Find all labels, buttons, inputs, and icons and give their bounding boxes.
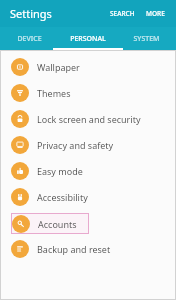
staticText: Accessibility [37,191,88,203]
staticText: Backup and reset [37,243,111,255]
button[interactable]: Backup and reset [0,236,176,262]
button[interactable]: DEVICE [0,27,58,50]
button[interactable]: SEARCH [110,9,135,18]
staticText: DEVICE [17,34,42,44]
staticText: SEARCH [110,9,135,18]
staticText: Wallpaper [37,61,80,73]
staticText: Lock screen and security [37,113,141,125]
button[interactable]: Accessibility [0,184,176,210]
staticText: Easy mode [37,165,83,177]
staticText: SYSTEM [133,34,160,44]
button[interactable]: Lock screen and security [0,106,176,132]
staticText: Privacy and safety [37,139,114,151]
button[interactable]: Accounts [0,210,176,236]
button[interactable]: Privacy and safety [0,132,176,158]
staticText: MORE [146,9,165,18]
button[interactable]: MORE [146,9,165,18]
staticText: PERSONAL [70,34,106,44]
staticText: Settings [10,6,52,21]
button[interactable]: SYSTEM [117,27,176,50]
button[interactable]: Wallpaper [0,54,176,80]
staticText: Themes [37,87,71,99]
staticText: Accounts [38,218,77,230]
button[interactable]: Easy mode [0,158,176,184]
button[interactable]: PERSONAL [58,27,117,50]
button[interactable]: Themes [0,80,176,106]
